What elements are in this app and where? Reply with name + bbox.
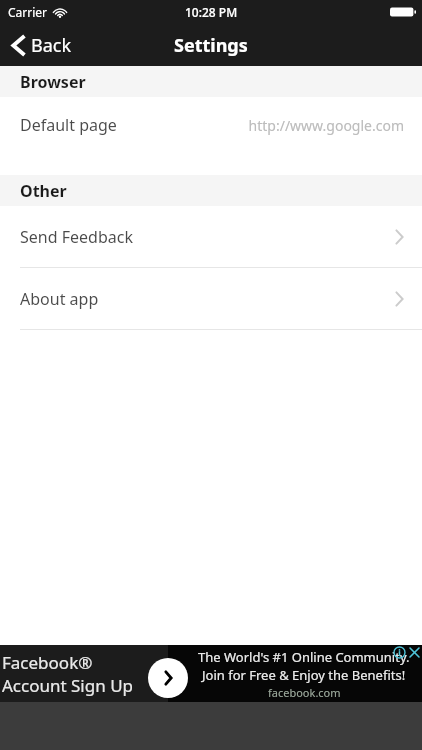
staticText: Browser xyxy=(20,71,86,93)
staticText: Other xyxy=(20,180,67,202)
staticText: Join for Free & Enjoy the Benefits! xyxy=(202,666,406,684)
button[interactable]: Default page xyxy=(0,97,422,153)
staticText: Carrier xyxy=(8,4,48,20)
staticText: 10:28 PM xyxy=(185,4,238,20)
button[interactable]: About app xyxy=(0,268,422,329)
staticText: Default page xyxy=(20,114,117,136)
staticText: http://www.google.com xyxy=(248,116,404,135)
button[interactable]: Ad information xyxy=(393,646,406,659)
staticText: The World's #1 Online Community. xyxy=(198,648,410,666)
staticText: Back xyxy=(31,33,72,58)
button[interactable]: Back xyxy=(0,27,84,64)
button[interactable]: Close ad xyxy=(408,646,421,659)
staticText: Account Sign Up xyxy=(2,674,134,697)
staticText: facebook.com xyxy=(268,685,341,700)
staticText: Facebook® xyxy=(2,651,93,674)
staticText: Send Feedback xyxy=(20,226,133,248)
button[interactable]: Send Feedback xyxy=(0,206,422,267)
staticText: About app xyxy=(20,288,99,310)
button[interactable]: Facebook® xyxy=(0,645,422,702)
staticText: Settings xyxy=(174,33,248,58)
